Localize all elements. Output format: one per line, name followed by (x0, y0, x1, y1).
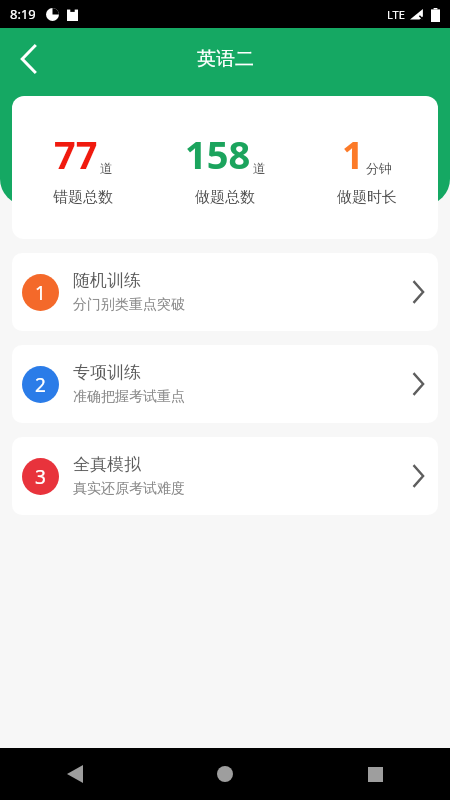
staticText: 2 (35, 372, 46, 398)
staticText: 道 (100, 160, 113, 176)
staticText: 3 (35, 464, 46, 490)
staticText: 做题时长 (337, 188, 397, 207)
button[interactable]: Home (150, 748, 300, 800)
staticText: 1 (35, 280, 46, 306)
staticText: 1 (342, 128, 364, 180)
staticText: 英语二 (197, 47, 254, 71)
staticText: 分钟 (366, 160, 392, 176)
button[interactable]: 3 (12, 437, 438, 515)
staticText: 做题总数 (195, 188, 255, 207)
staticText: 77 (54, 128, 98, 180)
staticText: 随机训练 (73, 270, 141, 291)
staticText: 158 (185, 128, 251, 180)
button[interactable]: Back (0, 748, 150, 800)
staticText: LTE (387, 7, 405, 22)
button[interactable]: 1 (12, 253, 438, 331)
staticText: 专项训练 (73, 362, 141, 383)
staticText: 8:19 (10, 5, 36, 23)
staticText: 真实还原考试难度 (73, 480, 185, 498)
staticText: 准确把握考试重点 (73, 388, 185, 406)
staticText: 错题总数 (53, 188, 113, 207)
staticText: 道 (253, 160, 266, 176)
button[interactable]: Back (6, 37, 50, 81)
staticText: 分门别类重点突破 (73, 296, 185, 314)
button[interactable]: 2 (12, 345, 438, 423)
staticText: 全真模拟 (73, 454, 141, 475)
button[interactable]: Recent apps (300, 748, 450, 800)
